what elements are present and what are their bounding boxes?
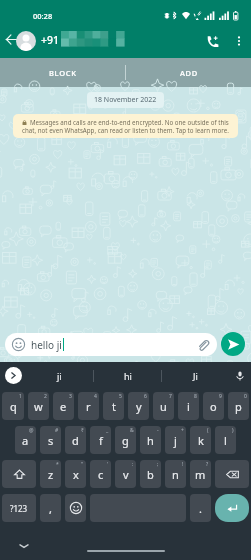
staticText: Ji (193, 370, 198, 382)
button[interactable]: More suggestions (5, 367, 22, 384)
button[interactable]: . (190, 494, 211, 522)
button[interactable]: j (165, 426, 186, 454)
staticText: 6 (144, 393, 147, 400)
button[interactable]: Emoji (5, 333, 217, 356)
button[interactable]: ?123 (2, 494, 36, 522)
staticText: a (22, 433, 29, 448)
staticText: u (160, 399, 167, 414)
button[interactable]: q (2, 392, 24, 420)
staticText: ₹ (81, 427, 84, 434)
button[interactable]: h (140, 426, 161, 454)
button[interactable]: Backspace (215, 460, 249, 488)
button[interactable]: Back (0, 28, 23, 51)
staticText: : (132, 461, 134, 468)
button[interactable]: g (115, 426, 136, 454)
button[interactable]: l (215, 426, 236, 454)
button[interactable]: w (28, 392, 49, 420)
button[interactable]: b (140, 460, 161, 488)
staticText: ( (207, 427, 209, 434)
button[interactable]: d (65, 426, 86, 454)
staticText: ! (182, 461, 184, 468)
staticText: 00:28 (33, 11, 53, 21)
staticText: e (60, 399, 67, 414)
staticText: t (112, 399, 116, 414)
staticText: q (10, 399, 17, 414)
button[interactable]: Voice input (229, 362, 251, 389)
staticText: o (210, 399, 217, 414)
button[interactable]: ADD (126, 58, 251, 87)
staticText: + (181, 427, 184, 434)
staticText: # (55, 427, 59, 434)
button[interactable]: x (65, 460, 86, 488)
staticText: Messages and calls are end-to-end encryp… (30, 118, 229, 126)
button[interactable]: Ji (162, 362, 229, 389)
button[interactable]: n (165, 460, 186, 488)
staticText: @ (29, 427, 34, 434)
staticText: m (195, 467, 206, 482)
staticText: 7 (169, 393, 172, 400)
button[interactable]: , (40, 494, 61, 522)
button[interactable]: m (190, 460, 211, 488)
staticText: hi (124, 370, 132, 382)
button[interactable]: z (40, 460, 61, 488)
staticText: ADD (180, 68, 198, 78)
staticText: ) (232, 427, 234, 434)
button[interactable]: v (115, 460, 136, 488)
button[interactable]: Emoji (12, 338, 25, 351)
button[interactable]: k (190, 426, 211, 454)
button[interactable]: o (203, 392, 224, 420)
button[interactable]: Enter (215, 494, 249, 522)
button[interactable]: r (78, 392, 99, 420)
staticText: c (98, 467, 104, 482)
button[interactable]: hi (94, 362, 161, 389)
button[interactable]: i (178, 392, 199, 420)
button[interactable]: a (15, 426, 36, 454)
button[interactable]: Attach (196, 338, 210, 352)
staticText: 2 (44, 393, 47, 400)
button[interactable]: ji (26, 362, 93, 389)
button[interactable]: Emoji (65, 494, 86, 522)
staticText: 1 (19, 393, 22, 400)
staticText: , (49, 501, 52, 516)
staticText: w (34, 399, 43, 414)
button[interactable]: p (228, 392, 249, 420)
button[interactable]: y (128, 392, 149, 420)
button[interactable]: Hide keyboard (13, 535, 35, 557)
button[interactable]: s (40, 426, 61, 454)
button[interactable] (16, 31, 36, 51)
button[interactable]: e (53, 392, 74, 420)
staticText: p (235, 399, 242, 414)
staticText: v (123, 467, 129, 482)
staticText: h (147, 433, 154, 448)
staticText: hello ji (31, 338, 62, 352)
staticText: d (72, 433, 79, 448)
button[interactable]: c (90, 460, 111, 488)
staticText: ? (206, 461, 209, 468)
staticText: chat, not even WhatsApp, can read or lis… (22, 126, 229, 134)
button[interactable]: t (103, 392, 124, 420)
staticText: z (48, 467, 54, 482)
staticText: +91 (41, 33, 60, 47)
staticText: 18 November 2022 (94, 95, 157, 105)
button[interactable]: Send (221, 332, 245, 356)
button[interactable]: Call (201, 29, 225, 53)
button[interactable]: f (90, 426, 111, 454)
staticText: 3 (69, 393, 72, 400)
staticText: ' (107, 461, 109, 468)
staticText: 0 (244, 393, 247, 400)
button[interactable]: Messages and calls are end-to-end encryp… (13, 114, 238, 138)
staticText: r (86, 399, 91, 414)
button[interactable]: Shift (2, 460, 36, 488)
staticText: 4 (94, 393, 97, 400)
staticText: . (199, 501, 202, 516)
staticText: " (81, 461, 84, 468)
staticText: g (122, 433, 129, 448)
staticText: _ (106, 427, 109, 434)
staticText: f (99, 433, 103, 448)
staticText: 8 (194, 393, 197, 400)
button[interactable]: BLOCK (0, 58, 125, 87)
button[interactable]: u (153, 392, 174, 420)
staticText: n (172, 467, 179, 482)
button[interactable]: More options (227, 29, 250, 52)
